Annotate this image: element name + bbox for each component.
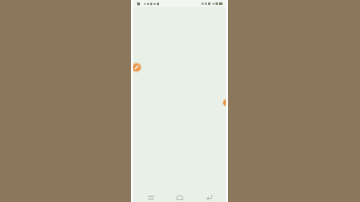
button[interactable]: Home <box>172 191 188 202</box>
button[interactable]: Recent apps <box>143 191 159 202</box>
button[interactable]: Compose <box>131 62 142 73</box>
button[interactable]: Back <box>201 190 217 202</box>
